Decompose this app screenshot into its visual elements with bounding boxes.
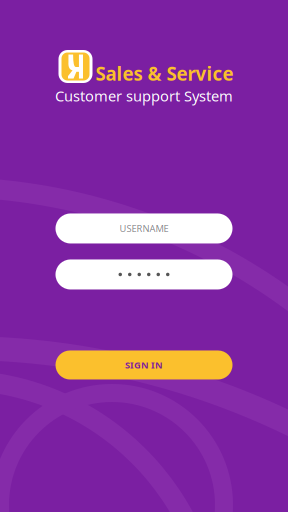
staticText: Customer support System — [55, 86, 233, 105]
staticText: Sales & Service — [95, 61, 233, 86]
button[interactable]: SIGN IN — [55, 350, 232, 379]
staticText: USERNAME — [119, 222, 168, 235]
staticText: SIGN IN — [125, 359, 163, 371]
